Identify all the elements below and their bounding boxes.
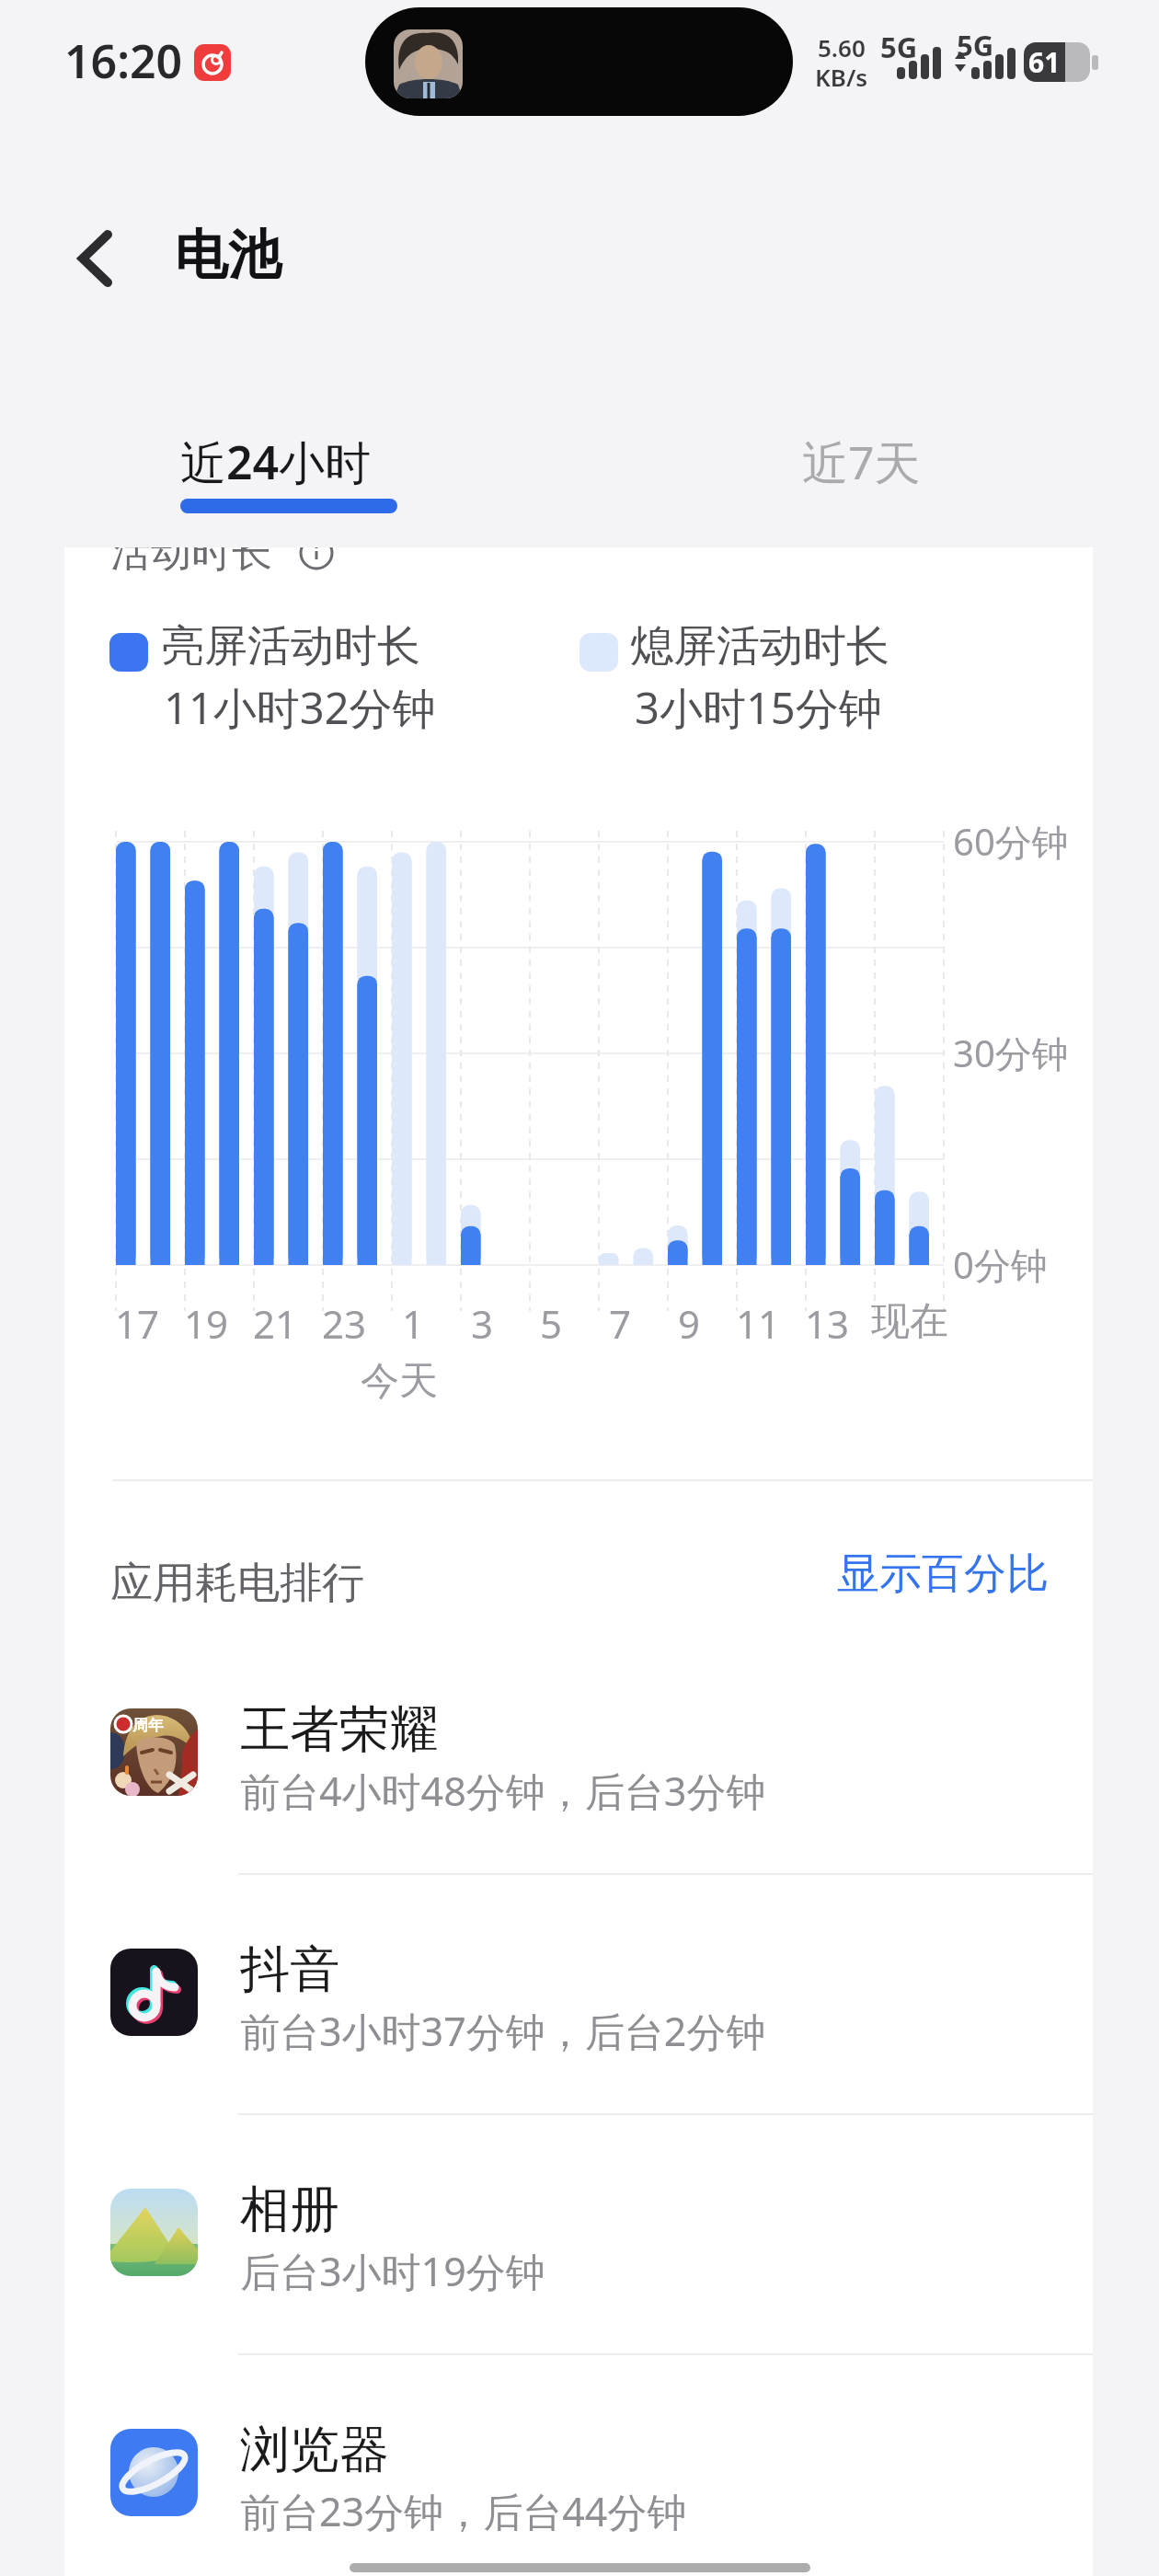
button[interactable]: 抖音 — [64, 1949, 1093, 2160]
staticText: 现在 — [871, 1297, 948, 1346]
staticText: 前台23分钟，后台44分钟 — [240, 2484, 687, 2538]
staticText: 17 — [115, 1297, 160, 1350]
staticText: 后台3小时19分钟 — [240, 2244, 545, 2298]
staticText: 王者荣耀 — [240, 1698, 439, 1761]
staticText: 16:20 — [64, 29, 183, 92]
staticText: 7 — [609, 1297, 632, 1350]
staticText: 1 — [402, 1297, 425, 1350]
staticText: 13 — [805, 1297, 850, 1350]
staticText: KB/s — [815, 61, 868, 93]
staticText: 周年 — [132, 1716, 164, 1735]
button[interactable]: 浏览器 — [64, 2429, 1093, 2576]
staticText: 浏览器 — [240, 2419, 389, 2481]
button[interactable]: 近24小时 — [180, 431, 372, 523]
staticText: 熄屏活动时长 — [630, 619, 889, 673]
staticText: 9 — [678, 1297, 701, 1350]
staticText: 21 — [253, 1297, 298, 1350]
button[interactable]: 显示百分比 — [837, 1547, 1049, 1612]
staticText: 应用耗电排行 — [110, 1557, 364, 1610]
staticText: 相册 — [240, 2179, 339, 2241]
staticText: 11小时32分钟 — [164, 678, 436, 737]
staticText: 前台4小时48分钟，后台3分钟 — [240, 1764, 766, 1818]
staticText: 11 — [736, 1297, 781, 1350]
staticText: 近24小时 — [180, 431, 372, 493]
staticText: 今天 — [361, 1357, 438, 1406]
button[interactable]: 周年 — [64, 1708, 1093, 1920]
button[interactable]: 近7天 — [802, 431, 921, 523]
staticText: 61 — [1028, 43, 1061, 81]
staticText: 5.60 — [818, 31, 866, 63]
button[interactable]: 相册 — [64, 2189, 1093, 2400]
staticText: 5 — [540, 1297, 563, 1350]
staticText: 抖音 — [240, 1938, 339, 2001]
staticText: 30分钟 — [953, 1028, 1069, 1078]
staticText: 前台3小时37分钟，后台2分钟 — [240, 2004, 766, 2058]
staticText: 3小时15分钟 — [635, 678, 882, 737]
staticText: 亮屏活动时长 — [161, 619, 420, 673]
staticText: 19 — [184, 1297, 229, 1350]
button[interactable] — [76, 232, 113, 285]
staticText: 60分钟 — [953, 816, 1069, 867]
staticText: 23 — [322, 1297, 367, 1350]
staticText: 3 — [471, 1297, 494, 1350]
staticText: 0分钟 — [953, 1239, 1048, 1290]
staticText: 5G — [880, 28, 918, 66]
staticText: 近7天 — [802, 431, 921, 493]
staticText: 活动时长 — [110, 547, 272, 578]
staticText: 5G — [957, 26, 994, 64]
staticText: 电池 — [175, 222, 281, 289]
staticText: 显示百分比 — [837, 1547, 1049, 1601]
